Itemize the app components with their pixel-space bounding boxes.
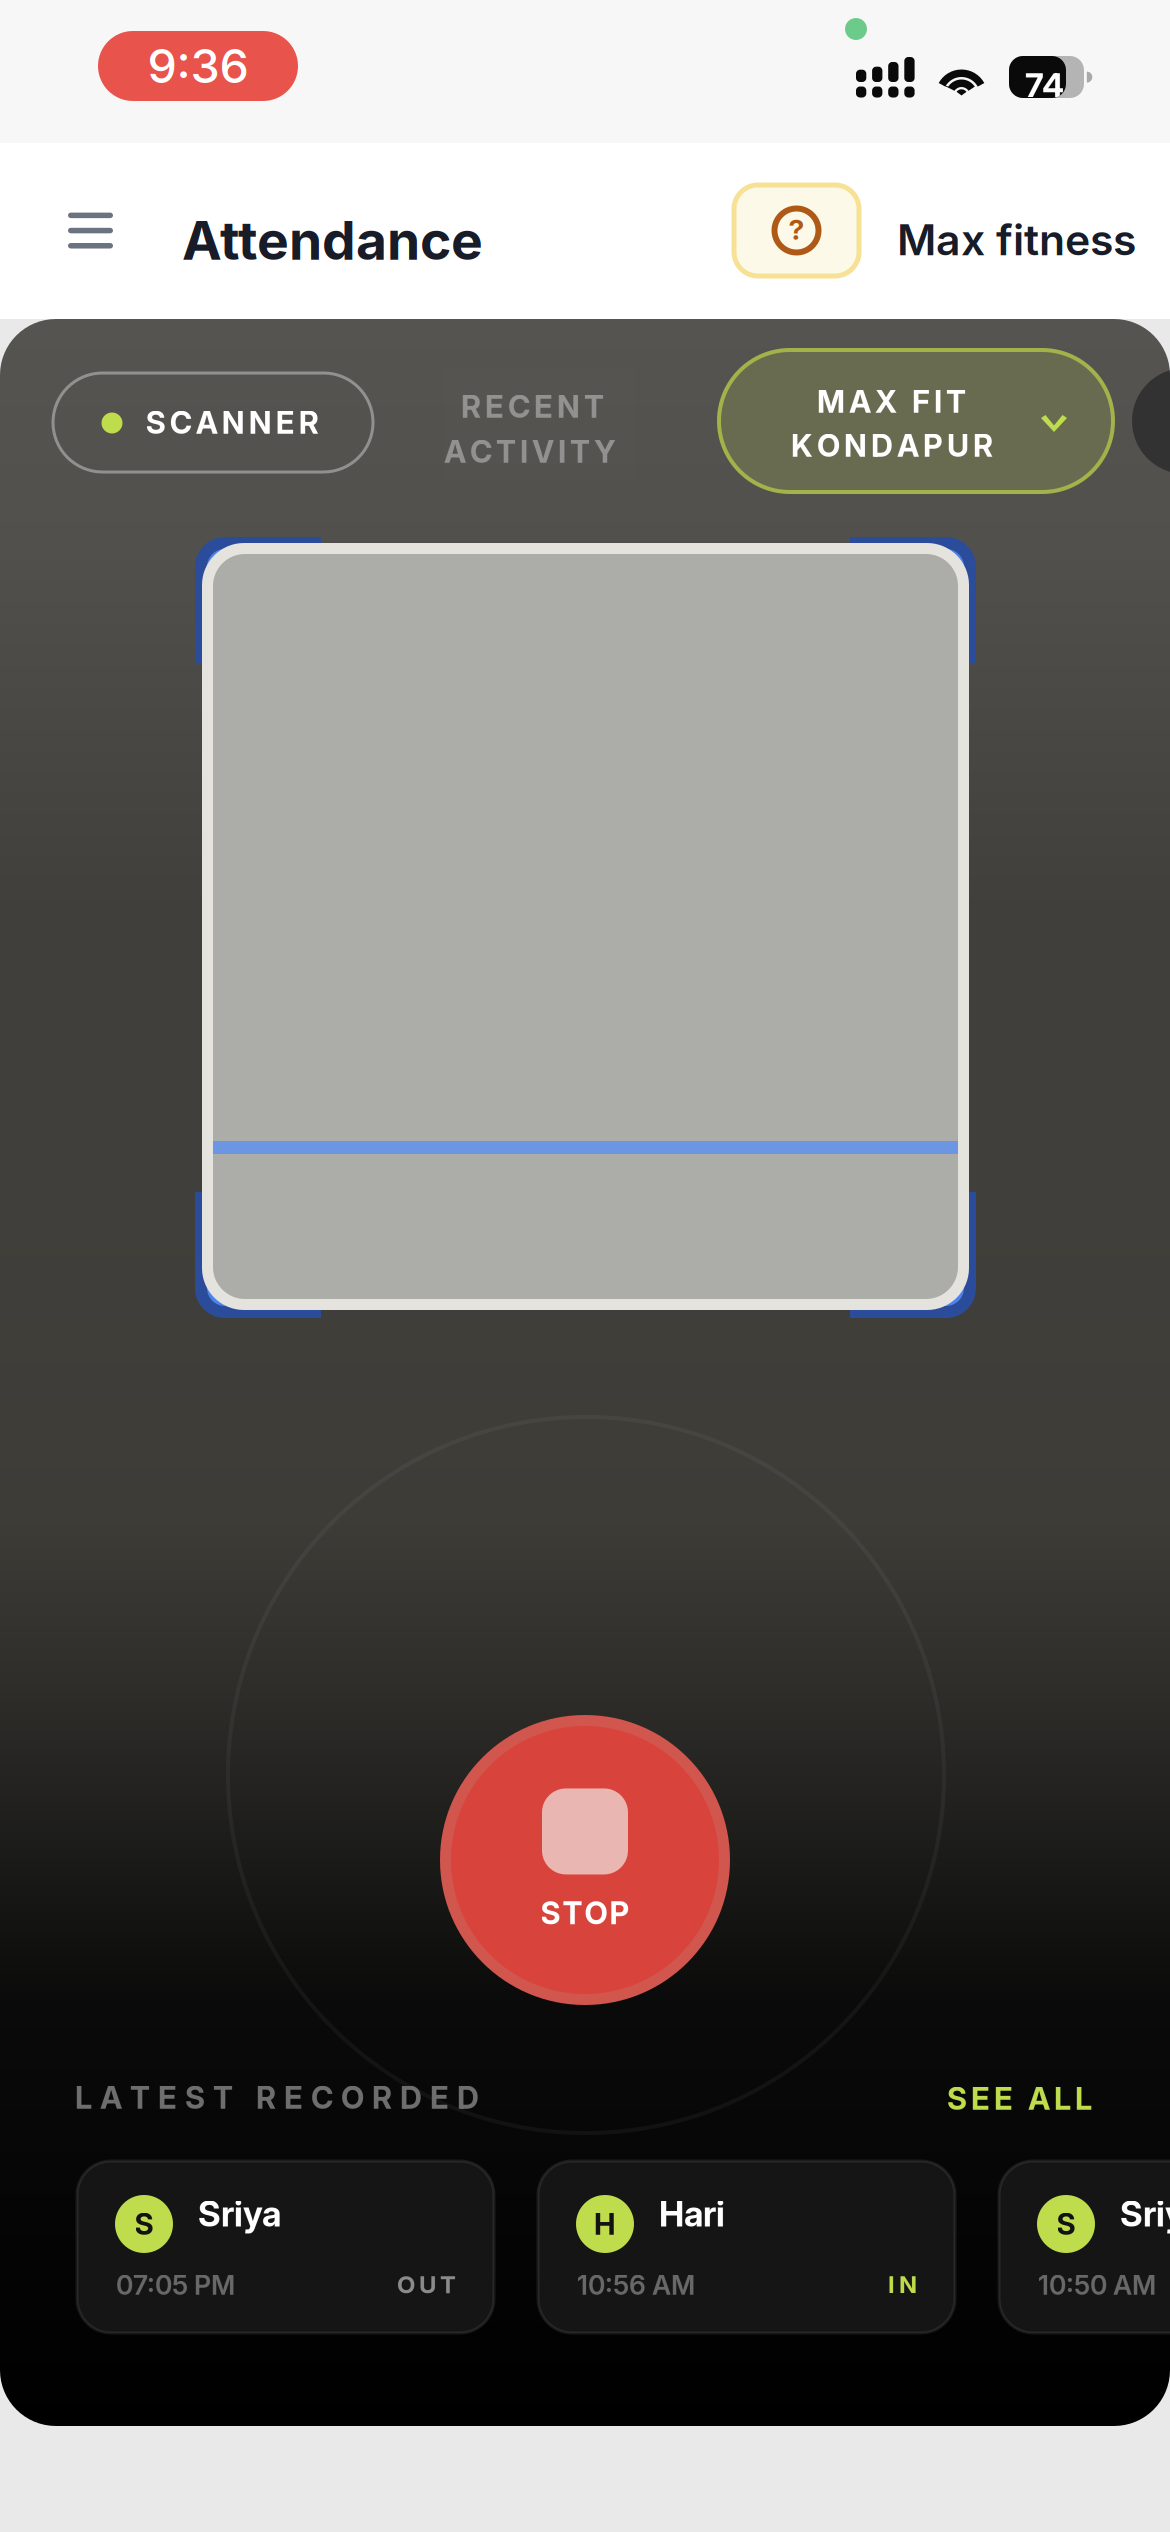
staticText: S T O P <box>540 1894 629 1931</box>
staticText: S <box>134 2206 153 2242</box>
staticText: I N <box>888 2270 917 2299</box>
staticText: Attendance <box>182 208 483 272</box>
staticText: S E E A L L <box>947 2080 1092 2117</box>
staticText: M A X F I T <box>817 383 966 420</box>
button[interactable]: Help <box>734 185 859 276</box>
staticText: A C T I V I T Y <box>444 433 616 470</box>
staticText: 07:05 PM <box>116 2269 235 2301</box>
staticText: ? <box>788 213 804 246</box>
button[interactable]: S <box>999 2161 1170 2333</box>
staticText: S <box>1056 2206 1075 2242</box>
staticText: R E C E N T <box>461 388 604 425</box>
button[interactable]: S <box>77 2161 494 2333</box>
button[interactable]: Menu <box>28 165 152 297</box>
button[interactable]: R E C E N T <box>444 369 634 479</box>
staticText: 74 <box>1025 65 1064 105</box>
staticText: L A T E S T R E C O R D E D <box>75 2079 479 2116</box>
staticText: Sriya <box>1120 2193 1170 2235</box>
staticText: 10:50 AM <box>1038 2269 1156 2301</box>
staticText: H <box>594 2206 616 2242</box>
staticText: Hari <box>659 2193 725 2235</box>
staticText: Sriya <box>198 2193 281 2235</box>
button[interactable]: H <box>538 2161 955 2333</box>
staticText: O U T <box>397 2270 456 2299</box>
staticText: 10:56 AM <box>577 2269 695 2301</box>
staticText: 9:36 <box>147 38 248 94</box>
button[interactable]: M A X F I T <box>719 350 1113 492</box>
button[interactable]: S C A N N E R <box>53 373 373 472</box>
button[interactable]: S E E A L L <box>947 2080 1092 2117</box>
button[interactable]: S T O P <box>440 1715 730 2005</box>
staticText: K O N D A P U R <box>791 427 993 464</box>
staticText: Max fitness <box>897 214 1136 266</box>
staticText: S C A N N E R <box>146 404 319 441</box>
